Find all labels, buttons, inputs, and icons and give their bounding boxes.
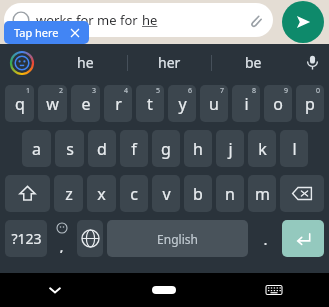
staticText: a <box>32 138 41 160</box>
button[interactable]: v <box>152 175 180 212</box>
staticText: n <box>225 183 235 205</box>
staticText: s <box>66 138 74 160</box>
button[interactable]: Switch keyboard <box>219 273 329 307</box>
button[interactable]: t <box>136 85 164 122</box>
button[interactable]: he <box>44 44 127 81</box>
staticText: l <box>292 138 297 160</box>
staticText: g <box>161 138 171 160</box>
button[interactable]: works for me for <box>4 3 273 37</box>
button[interactable]: Tap here <box>4 21 89 44</box>
staticText: h <box>193 138 203 160</box>
button[interactable]: z <box>54 175 83 212</box>
staticText: x <box>97 183 106 205</box>
staticText: v <box>162 183 171 205</box>
staticText: z <box>65 183 73 205</box>
staticText: o <box>273 93 283 115</box>
button[interactable]: i <box>232 85 260 122</box>
button[interactable]: Home <box>109 273 219 307</box>
staticText: 9 <box>284 86 289 96</box>
button[interactable]: Back <box>0 273 109 307</box>
staticText: i <box>244 93 249 115</box>
staticText: m <box>255 183 270 205</box>
staticText: 6 <box>188 86 193 96</box>
button[interactable]: k <box>248 130 276 167</box>
button[interactable]: o <box>264 85 292 122</box>
button[interactable]: b <box>184 175 212 212</box>
staticText: 2 <box>59 86 64 96</box>
button[interactable]: y <box>168 85 196 122</box>
button[interactable]: . <box>252 220 278 257</box>
staticText: be <box>245 53 262 72</box>
staticText: 7 <box>220 86 225 96</box>
staticText: . <box>263 229 268 249</box>
button[interactable]: m <box>248 175 276 212</box>
staticText: he <box>77 53 94 72</box>
button[interactable]: c <box>120 175 148 212</box>
button[interactable]: q <box>5 85 34 122</box>
button[interactable]: be <box>212 44 295 81</box>
button[interactable]: d <box>88 130 116 167</box>
staticText: r <box>115 93 122 115</box>
staticText: 8 <box>252 86 257 96</box>
staticText: j <box>228 138 233 160</box>
staticText: t <box>147 93 153 115</box>
staticText: q <box>15 93 25 115</box>
button[interactable]: e <box>71 85 100 122</box>
staticText: , <box>60 240 64 255</box>
staticText: 5 <box>156 86 161 96</box>
button[interactable]: Attach <box>245 10 265 30</box>
staticText: ?123 <box>11 229 42 248</box>
staticText: y <box>178 93 187 115</box>
button[interactable]: Emoji <box>0 44 44 81</box>
button[interactable]: r <box>104 85 132 122</box>
button[interactable]: English <box>107 220 248 257</box>
button[interactable]: h <box>184 130 212 167</box>
staticText: w <box>46 93 59 115</box>
button[interactable]: ?123 <box>5 220 47 257</box>
button[interactable]: Send <box>282 1 324 43</box>
button[interactable]: n <box>216 175 244 212</box>
staticText: works for me for <box>36 11 142 29</box>
button[interactable]: p <box>296 85 324 122</box>
staticText: Tap here <box>14 25 59 40</box>
button[interactable]: Backspace <box>280 175 324 212</box>
button[interactable]: s <box>55 130 84 167</box>
button[interactable]: x <box>87 175 116 212</box>
button[interactable]: Shift <box>5 175 50 212</box>
staticText: b <box>193 183 203 205</box>
staticText: d <box>97 138 107 160</box>
button[interactable]: g <box>152 130 180 167</box>
staticText: English <box>157 231 198 247</box>
button[interactable]: f <box>120 130 148 167</box>
staticText: he <box>142 11 158 29</box>
button[interactable]: j <box>216 130 244 167</box>
button[interactable]: Voice input <box>295 44 329 81</box>
button[interactable]: Change language <box>77 220 103 257</box>
staticText: her <box>158 53 181 72</box>
button[interactable]: u <box>200 85 228 122</box>
staticText: 0 <box>316 86 321 96</box>
staticText: u <box>209 93 219 115</box>
button[interactable]: w <box>38 85 67 122</box>
staticText: e <box>81 93 91 115</box>
button[interactable]: Enter <box>282 220 324 257</box>
staticText: 4 <box>124 86 129 96</box>
staticText: 1 <box>26 86 31 96</box>
staticText: f <box>131 138 137 160</box>
button[interactable]: her <box>128 44 211 81</box>
button[interactable]: Emoji and comma <box>51 220 73 257</box>
staticText: k <box>258 138 267 160</box>
button[interactable]: a <box>22 130 51 167</box>
button[interactable]: l <box>280 130 308 167</box>
staticText: 3 <box>92 86 97 96</box>
staticText: p <box>305 93 315 115</box>
staticText: c <box>130 183 138 205</box>
